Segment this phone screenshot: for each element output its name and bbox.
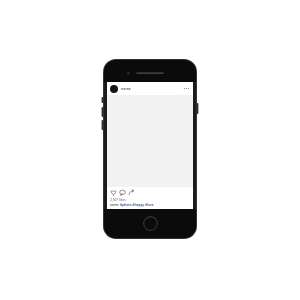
- staticText: #photo #happy #love: [120, 203, 154, 207]
- button[interactable]: Profile photo: [107, 82, 193, 95]
- button[interactable]: More options: [182, 84, 190, 93]
- button[interactable]: Share: [128, 189, 135, 196]
- button[interactable]: Home: [143, 216, 158, 231]
- button[interactable]: Comment: [119, 189, 126, 196]
- button[interactable]: Profile photo: [110, 85, 118, 93]
- button[interactable]: Like: [110, 189, 117, 196]
- staticText: 2,567 likes: [110, 198, 126, 202]
- staticText: name: [121, 86, 131, 91]
- staticText: name: [110, 203, 120, 207]
